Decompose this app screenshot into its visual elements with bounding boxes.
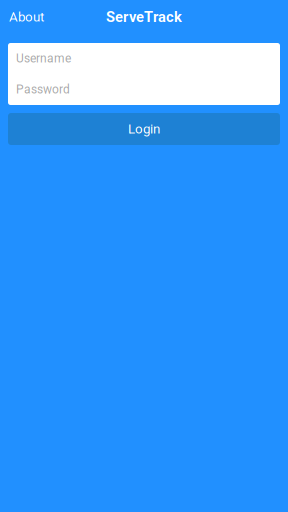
staticText: Username (16, 51, 71, 66)
staticText: ServeTrack (106, 8, 182, 26)
button[interactable]: Username (8, 43, 280, 74)
button[interactable]: Login (8, 113, 280, 145)
staticText: Login (128, 121, 160, 137)
button[interactable]: About (9, 5, 44, 29)
button[interactable]: Password (8, 74, 280, 105)
staticText: Password (16, 82, 70, 97)
staticText: About (9, 9, 44, 25)
